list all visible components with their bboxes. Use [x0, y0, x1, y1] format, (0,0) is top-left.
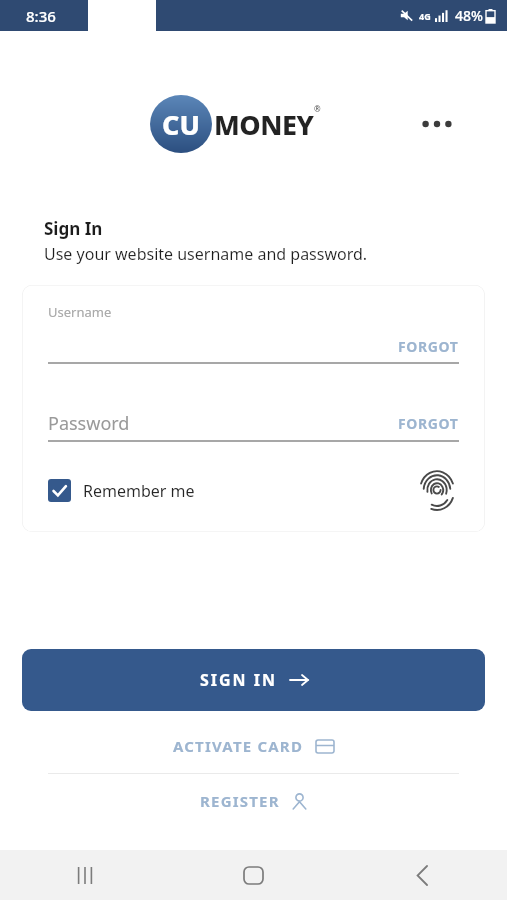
button[interactable]: ACTIVATE CARD	[22, 719, 485, 773]
staticText: FORGOT	[398, 337, 459, 356]
button[interactable]: SIGN IN	[22, 649, 485, 711]
staticText: CU	[162, 106, 200, 143]
staticText: REGISTER	[200, 791, 280, 811]
staticText: 4G	[419, 10, 431, 22]
button[interactable]: Remember me	[48, 479, 195, 502]
button[interactable]: FORGOT	[398, 414, 459, 433]
staticText: SIGN IN	[200, 669, 278, 691]
staticText: Use your website username and password.	[44, 243, 368, 265]
button[interactable]: Back	[338, 850, 507, 900]
staticText: Username	[48, 303, 112, 321]
staticText: 48%	[455, 6, 483, 25]
staticText: FORGOT	[398, 414, 459, 433]
staticText: ACTIVATE CARD	[173, 736, 304, 756]
button[interactable]: More options	[415, 102, 459, 146]
button[interactable]: Home	[169, 850, 338, 900]
button[interactable]: Sign in with fingerprint	[415, 468, 459, 512]
staticText: 8:36	[26, 6, 56, 26]
button[interactable]: Recent apps	[0, 850, 169, 900]
staticText: Sign In	[44, 217, 103, 240]
button[interactable]: REGISTER	[22, 774, 485, 828]
staticText: ®	[314, 103, 321, 114]
button[interactable]: FORGOT	[398, 337, 459, 356]
staticText: Remember me	[83, 480, 195, 502]
staticText: Password	[48, 411, 130, 436]
staticText: MONEY	[214, 106, 314, 143]
